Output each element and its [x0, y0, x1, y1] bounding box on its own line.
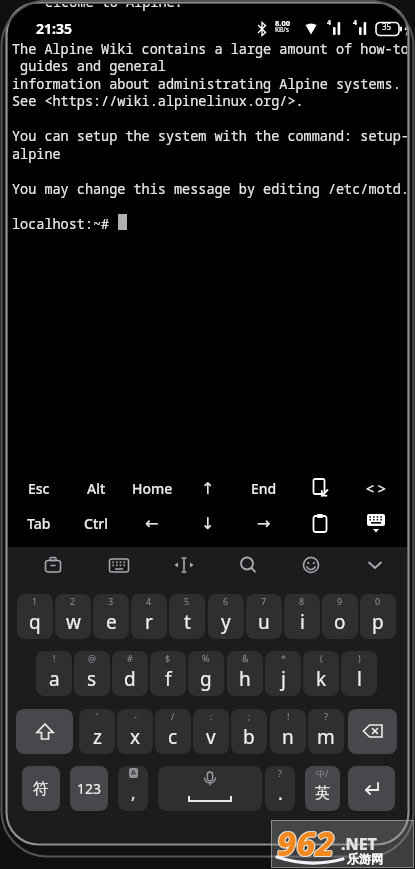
button[interactable]: [348, 766, 395, 811]
button[interactable]: [348, 709, 397, 754]
staticText: k: [316, 666, 327, 692]
staticText: /: [171, 710, 175, 722]
button[interactable]: b: [231, 709, 267, 754]
button[interactable]: a: [36, 651, 72, 696]
staticText: guides and general: [12, 57, 166, 75]
staticText: Home: [132, 479, 173, 498]
staticText: 21:35: [36, 19, 72, 38]
staticText: 962: [276, 820, 334, 866]
staticText: 8.00: [275, 18, 290, 28]
staticText: ,: [131, 781, 136, 804]
button[interactable]: ↓: [182, 507, 234, 539]
button[interactable]: i: [284, 594, 320, 639]
staticText: @: [88, 652, 97, 664]
button[interactable]: w: [55, 594, 91, 639]
button[interactable]: e: [93, 594, 129, 639]
staticText: 4: [327, 18, 332, 28]
button[interactable]: x: [117, 709, 153, 754]
staticText: Alt: [87, 479, 106, 498]
staticText: o: [334, 609, 346, 635]
staticText: ?: [278, 767, 282, 779]
staticText: 8: [299, 595, 305, 607]
button[interactable]: l: [341, 651, 377, 696]
button[interactable]: Tab: [13, 507, 65, 539]
staticText: z: [93, 724, 102, 750]
button[interactable]: j: [265, 651, 301, 696]
staticText: 4: [353, 18, 358, 28]
staticText: 4: [146, 595, 152, 607]
button[interactable]: c: [155, 709, 191, 754]
button[interactable]: v: [193, 709, 229, 754]
staticText: c: [168, 724, 178, 750]
button[interactable]: r: [131, 594, 167, 639]
button[interactable]: f: [150, 651, 186, 696]
staticText: 962: [277, 820, 335, 866]
button[interactable]: [359, 549, 391, 581]
button[interactable]: p: [360, 594, 396, 639]
staticText: ): [358, 652, 361, 664]
button[interactable]: u: [246, 594, 282, 639]
button[interactable]: ←: [126, 507, 178, 539]
button[interactable]: Home: [126, 472, 178, 504]
staticText: ↑: [201, 479, 215, 498]
staticText: See <https://wiki.alpinelinux.org/>.: [12, 92, 304, 110]
button[interactable]: m: [308, 709, 344, 754]
button[interactable]: .: [265, 766, 295, 811]
button[interactable]: Ctrl: [70, 507, 122, 539]
button[interactable]: 符: [22, 766, 60, 811]
button[interactable]: d: [112, 651, 148, 696]
staticText: a: [49, 666, 60, 692]
button[interactable]: [166, 549, 202, 581]
staticText: v: [206, 724, 216, 750]
staticText: .: [278, 781, 283, 806]
button[interactable]: [232, 549, 264, 581]
staticText: 6: [223, 595, 229, 607]
button[interactable]: k: [303, 651, 339, 696]
staticText: n: [282, 724, 294, 750]
button[interactable]: Alt: [70, 472, 122, 504]
button[interactable]: [102, 549, 136, 581]
button[interactable]: →: [238, 507, 290, 539]
button[interactable]: o: [322, 594, 358, 639]
staticText: ↓: [201, 514, 215, 533]
staticText: ←: [145, 514, 159, 533]
button[interactable]: 英: [305, 766, 340, 811]
staticText: 中/: [316, 767, 329, 779]
button[interactable]: [294, 472, 346, 504]
button[interactable]: t: [169, 594, 205, 639]
button[interactable]: ↑: [182, 472, 234, 504]
staticText: p: [372, 609, 384, 635]
button[interactable]: [350, 507, 402, 539]
staticText: u: [258, 609, 270, 635]
button[interactable]: ,: [118, 766, 148, 811]
staticText: 5: [184, 595, 190, 607]
button[interactable]: [158, 766, 262, 811]
staticText: 35: [382, 21, 392, 32]
button[interactable]: [16, 709, 73, 754]
button[interactable]: [295, 549, 327, 581]
button[interactable]: 123: [70, 766, 108, 811]
staticText: 962: [277, 821, 335, 867]
button[interactable]: [37, 549, 69, 581]
button[interactable]: s: [74, 651, 110, 696]
staticText: Ctrl: [84, 514, 108, 533]
staticText: alpine: [12, 145, 61, 163]
button[interactable]: z: [79, 709, 115, 754]
button[interactable]: g: [188, 651, 224, 696]
button[interactable]: End: [238, 472, 290, 504]
staticText: x: [130, 724, 141, 750]
staticText: *: [281, 652, 286, 664]
button[interactable]: [294, 507, 346, 539]
staticText: g: [200, 666, 212, 692]
button[interactable]: y: [208, 594, 244, 639]
staticText: e: [106, 609, 117, 635]
staticText: ?: [324, 710, 328, 722]
staticText: A: [131, 768, 136, 778]
staticText: elcome to Alpine!: [45, 4, 183, 11]
staticText: 962: [277, 819, 335, 865]
button[interactable]: < >: [350, 472, 402, 504]
button[interactable]: n: [270, 709, 306, 754]
button[interactable]: Esc: [13, 472, 65, 504]
button[interactable]: h: [227, 651, 263, 696]
button[interactable]: q: [17, 594, 53, 639]
